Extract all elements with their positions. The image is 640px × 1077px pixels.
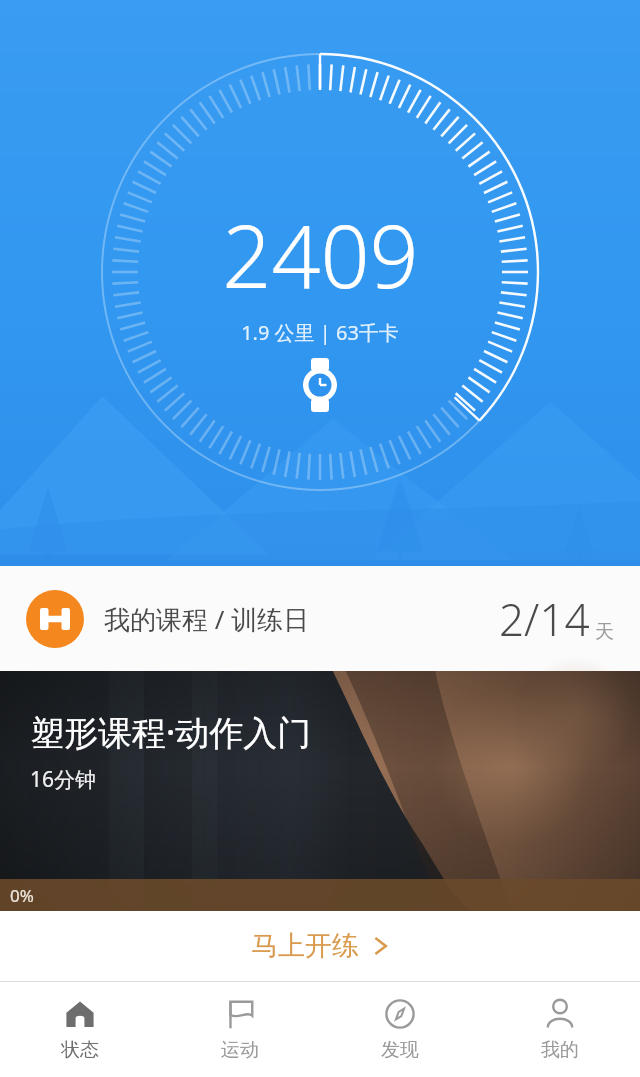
staticText: 16分钟 (30, 765, 97, 794)
staticText: 0% (10, 884, 34, 907)
staticText: 状态 (61, 1038, 99, 1062)
button[interactable]: 发现 (320, 982, 480, 1077)
button[interactable]: 我的课程 / 训练日 (0, 566, 640, 671)
button[interactable]: 状态 (0, 982, 160, 1077)
staticText: 塑形课程·动作入门 (30, 709, 312, 755)
button[interactable]: 马上开练 (0, 911, 640, 981)
staticText: 发现 (381, 1038, 419, 1062)
staticText: 我的 (541, 1038, 579, 1062)
button[interactable]: 我的 (480, 982, 640, 1077)
button[interactable]: 塑形课程·动作入门 (0, 671, 640, 911)
button[interactable]: 运动 (160, 982, 320, 1077)
staticText: 2409 (222, 196, 419, 313)
staticText: 我的课程 / 训练日 (104, 601, 310, 637)
staticText: 马上开练 (251, 929, 359, 963)
staticText: 天 (595, 620, 614, 644)
staticText: 2/14 (499, 589, 590, 649)
staticText: 运动 (221, 1038, 259, 1062)
staticText: 1.9 公里 | 63千卡 (241, 319, 399, 346)
